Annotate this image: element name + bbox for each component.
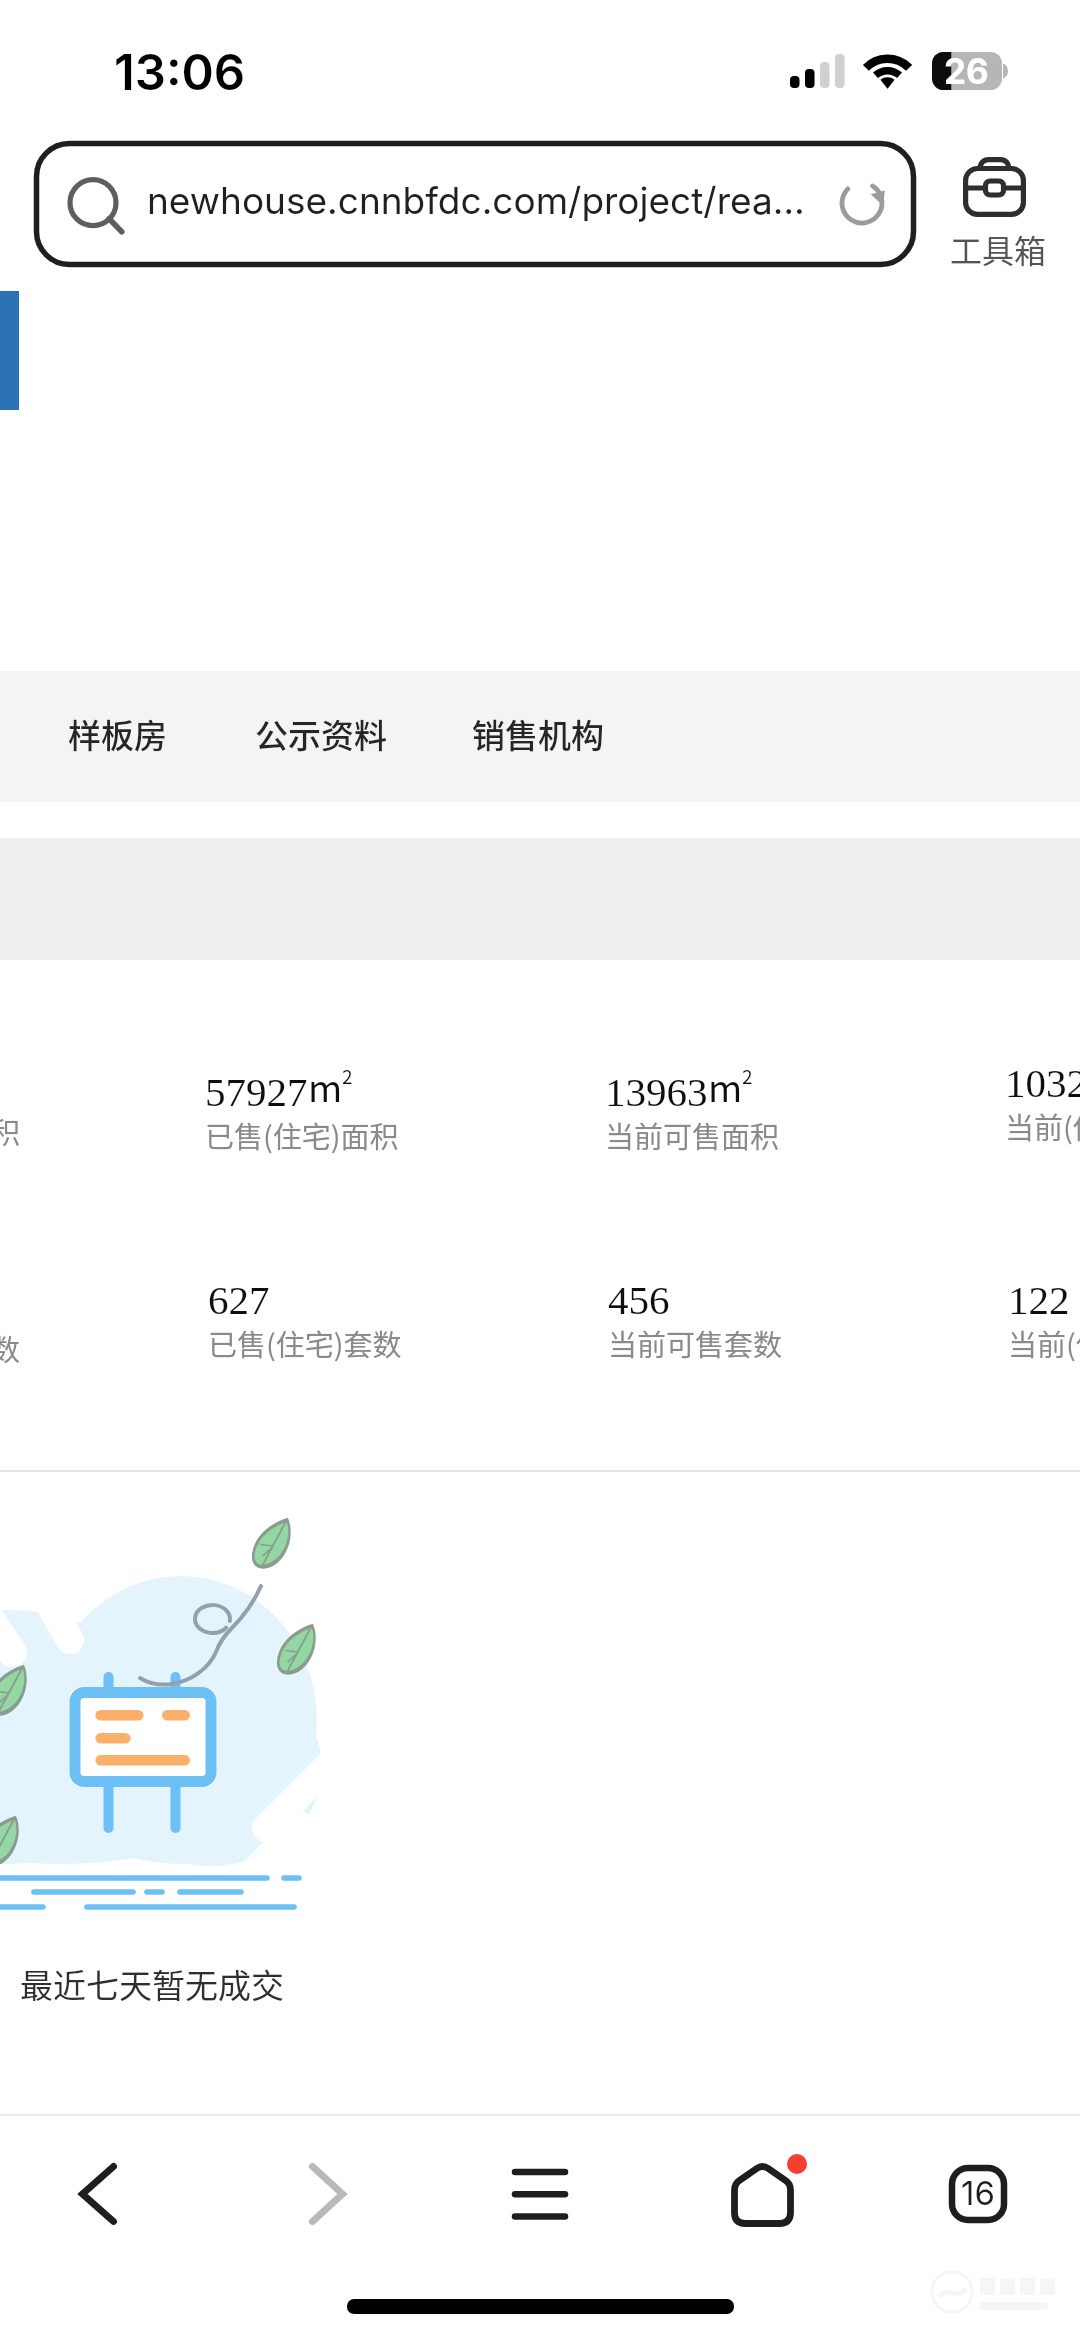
staticText: 公示资料: [255, 710, 387, 758]
staticText: m: [708, 1059, 743, 1113]
staticText: 样板房: [68, 710, 167, 758]
staticText: 627: [208, 1277, 270, 1322]
staticText: 当前可售套数: [608, 1322, 783, 1364]
staticText: 13963: [605, 1069, 708, 1114]
staticText: 456: [608, 1277, 670, 1322]
button[interactable]: Forward: [227, 2110, 427, 2278]
button[interactable]: Back: [0, 2110, 195, 2278]
staticText: m: [308, 1059, 343, 1113]
staticText: 26: [944, 50, 989, 92]
button[interactable]: 销售机构: [452, 668, 624, 799]
staticText: 57927: [205, 1069, 308, 1114]
staticText: 已售(住宅)套数: [208, 1322, 402, 1364]
staticText: 积: [0, 1110, 21, 1152]
staticText: 1032: [1005, 1060, 1080, 1105]
button[interactable]: 公示资料: [235, 668, 407, 799]
staticText: 2: [342, 1062, 353, 1090]
button[interactable]: Reload: [813, 153, 917, 255]
staticText: 当前(保: [1008, 1322, 1080, 1364]
staticText: newhouse.cnnbfdc.com/project/rea…: [147, 178, 805, 223]
button[interactable]: Toolbox: [942, 150, 1050, 270]
staticText: 工具箱: [950, 226, 1047, 272]
button[interactable]: 样板房: [48, 668, 187, 799]
button[interactable]: Tabs: [877, 2110, 1078, 2278]
staticText: 122: [1008, 1277, 1070, 1322]
staticText: 当前(保: [1005, 1105, 1080, 1147]
staticText: 2: [742, 1062, 753, 1090]
button[interactable]: Home: [669, 2110, 877, 2278]
staticText: 已售(住宅)面积: [205, 1114, 399, 1156]
staticText: 销售机构: [472, 710, 604, 758]
staticText: 数: [0, 1327, 21, 1369]
button[interactable]: Menu: [440, 2110, 640, 2278]
staticText: 当前可售面积: [605, 1114, 780, 1156]
staticText: 13:06: [114, 43, 246, 102]
staticText: 16: [961, 2173, 995, 2213]
button[interactable]: newhouse.cnnbfdc.com/project/rea…: [34, 141, 916, 267]
staticText: 最近七天暂无成交: [20, 1960, 284, 2008]
